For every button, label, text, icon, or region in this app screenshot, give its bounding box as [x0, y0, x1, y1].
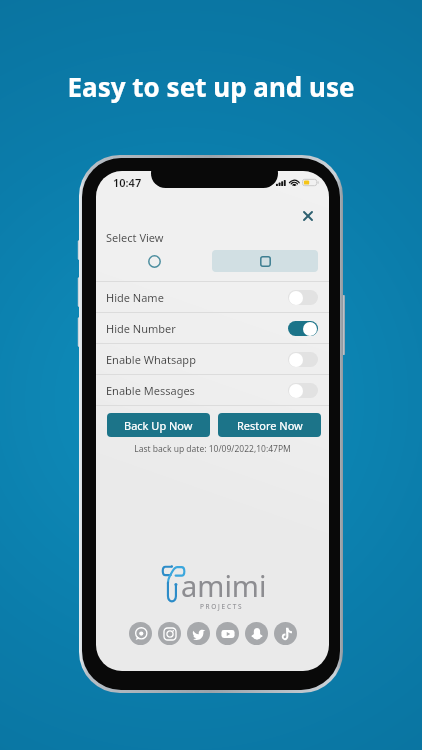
button[interactable]: Toggle [288, 352, 318, 367]
staticText: Hide Name [106, 290, 164, 305]
button[interactable]: YouTube [216, 622, 239, 645]
button[interactable]: Twitter [187, 622, 210, 645]
staticText: Back Up Now [124, 418, 193, 433]
button[interactable]: Hide Name [96, 282, 329, 312]
staticText: Last back up date: 10/09/2022,10:47PM [96, 443, 329, 455]
staticText: amimi [181, 566, 267, 605]
staticText: Restore Now [237, 418, 303, 433]
button[interactable]: WhatsApp [129, 622, 152, 645]
button[interactable]: Instagram [158, 622, 181, 645]
button[interactable]: Toggle [288, 321, 318, 336]
button[interactable]: Close [298, 206, 318, 226]
button[interactable]: Circle view [96, 250, 212, 272]
button[interactable]: Toggle [288, 383, 318, 398]
staticText: Enable Whatsapp [106, 352, 196, 367]
staticText: P R O J E C T S [200, 602, 242, 611]
staticText: 10:47 [113, 175, 142, 190]
staticText: Enable Messages [106, 383, 195, 398]
staticText: Select View [106, 230, 164, 245]
button[interactable]: Toggle [288, 290, 318, 305]
staticText: Hide Number [106, 321, 176, 336]
button[interactable]: TikTok [274, 622, 297, 645]
button[interactable]: Hide Number [96, 313, 329, 343]
button[interactable]: Enable Whatsapp [96, 344, 329, 374]
button[interactable]: Square view [212, 250, 318, 272]
button[interactable]: Enable Messages [96, 375, 329, 405]
staticText: Easy to set up and use [0, 69, 422, 104]
button[interactable]: Back Up Now [107, 413, 210, 437]
button[interactable]: Restore Now [218, 413, 321, 437]
button[interactable]: Snapchat [245, 622, 268, 645]
